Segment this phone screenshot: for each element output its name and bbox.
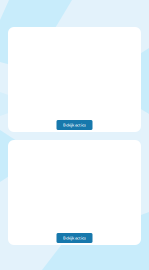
staticText: Bekijk acties	[63, 122, 86, 128]
button[interactable]: Bekijk acties	[56, 233, 92, 243]
staticText: Bekijk acties	[63, 235, 86, 241]
button[interactable]: Bekijk acties	[56, 120, 92, 130]
